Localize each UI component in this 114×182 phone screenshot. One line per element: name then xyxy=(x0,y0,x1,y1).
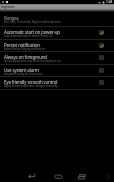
staticText: Use system alarm xyxy=(4,67,97,73)
button[interactable]: Enabled xyxy=(99,43,104,48)
staticText: No background access when the display is… xyxy=(4,59,97,63)
staticText: Eye friendly smooth control xyxy=(4,79,97,85)
staticText: Always on foreground xyxy=(4,54,97,60)
button[interactable]: Disabled xyxy=(99,55,104,60)
button[interactable]: Automatic start on power-up xyxy=(0,26,114,39)
staticText: 1:44 xyxy=(106,0,113,4)
staticText: Apply screen brightness changes smoothly xyxy=(4,84,97,88)
button[interactable]: Enabled xyxy=(99,30,104,35)
staticText: Ranges xyxy=(4,15,19,21)
button[interactable]: Always on foreground xyxy=(0,51,114,64)
button[interactable]: Disabled xyxy=(99,80,104,85)
button[interactable]: Recent apps xyxy=(74,169,88,182)
staticText: Automatic start on power-up xyxy=(4,29,97,35)
button[interactable]: More options xyxy=(101,169,114,182)
button[interactable]: Persist notification xyxy=(0,39,114,52)
staticText: Min, Max, Thresholds, Night mode brightn… xyxy=(4,20,61,24)
staticText: Start automatically on device Power On xyxy=(4,34,97,38)
button[interactable]: Eye friendly smooth control xyxy=(0,76,114,89)
button[interactable]: Back xyxy=(24,168,38,182)
button[interactable]: Use system alarm xyxy=(0,64,114,77)
staticText: Brightness xyxy=(1,5,15,9)
staticText: Active Service Display notification xyxy=(4,47,97,51)
staticText: Keepalive facility for the service xyxy=(4,72,97,76)
button[interactable]: Disabled xyxy=(99,68,104,73)
button[interactable]: Home xyxy=(51,169,65,182)
staticText: Persist notification xyxy=(4,42,97,48)
